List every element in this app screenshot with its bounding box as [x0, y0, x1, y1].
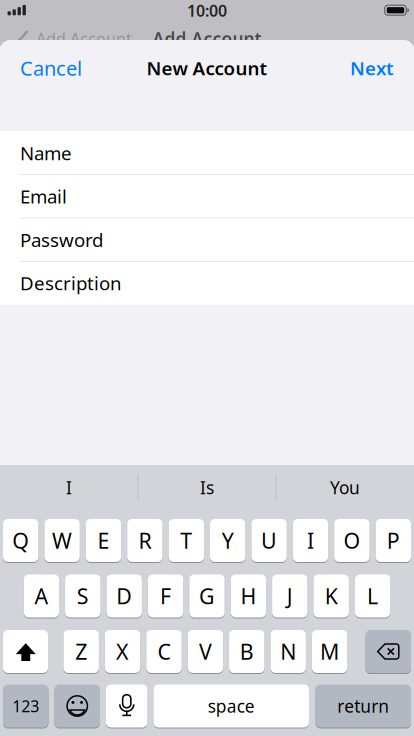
- staticText: E: [97, 526, 109, 555]
- button[interactable]: Password: [0, 218, 414, 261]
- button[interactable]: 123: [3, 684, 48, 728]
- staticText: K: [325, 582, 338, 610]
- button[interactable]: Is: [142, 465, 272, 510]
- staticText: Add Account: [152, 27, 261, 50]
- staticText: Is: [200, 476, 214, 499]
- button[interactable]: J: [272, 574, 307, 618]
- button[interactable]: Email: [0, 175, 414, 218]
- button[interactable]: M: [312, 629, 347, 673]
- staticText: B: [240, 637, 254, 666]
- button[interactable]: I: [293, 518, 328, 562]
- button[interactable]: R: [127, 518, 163, 562]
- staticText: O: [343, 526, 360, 555]
- button[interactable]: return: [315, 684, 411, 728]
- button[interactable]: T: [169, 518, 204, 562]
- staticText: Q: [12, 526, 29, 555]
- button[interactable]: Emoji: [54, 684, 100, 728]
- button[interactable]: L: [355, 574, 390, 618]
- button[interactable]: B: [229, 629, 264, 673]
- staticText: R: [138, 526, 151, 555]
- button[interactable]: Name: [0, 131, 414, 175]
- staticText: Email: [20, 184, 67, 209]
- button[interactable]: Q: [3, 518, 38, 562]
- staticText: You: [330, 476, 360, 499]
- staticText: F: [160, 582, 171, 610]
- button[interactable]: W: [44, 518, 80, 562]
- staticText: L: [367, 582, 378, 610]
- staticText: 123: [12, 695, 39, 717]
- staticText: I: [307, 526, 314, 555]
- button[interactable]: N: [270, 629, 306, 673]
- staticText: A: [34, 582, 48, 610]
- staticText: P: [387, 526, 400, 555]
- staticText: return: [337, 694, 389, 717]
- button[interactable]: A: [24, 574, 59, 618]
- staticText: T: [180, 526, 192, 555]
- button[interactable]: U: [251, 518, 287, 562]
- staticText: Y: [222, 526, 234, 555]
- button[interactable]: X: [105, 629, 140, 673]
- staticText: space: [208, 694, 255, 717]
- button[interactable]: I: [4, 465, 134, 510]
- staticText: X: [116, 637, 129, 666]
- button[interactable]: G: [189, 574, 225, 618]
- button[interactable]: P: [376, 518, 411, 562]
- button[interactable]: Shift: [3, 629, 48, 673]
- staticText: Description: [20, 271, 122, 295]
- staticText: Z: [75, 637, 87, 666]
- button[interactable]: space: [153, 684, 309, 728]
- button[interactable]: Next: [350, 56, 394, 80]
- staticText: H: [240, 582, 256, 610]
- staticText: Next: [350, 56, 394, 80]
- button[interactable]: C: [146, 629, 182, 673]
- staticText: Name: [20, 140, 72, 165]
- button[interactable]: Dictation: [106, 684, 147, 728]
- staticText: W: [52, 526, 72, 555]
- button[interactable]: H: [231, 574, 266, 618]
- button[interactable]: D: [106, 574, 142, 618]
- staticText: Password: [20, 227, 103, 252]
- button[interactable]: S: [65, 574, 100, 618]
- staticText: N: [280, 637, 296, 666]
- staticText: S: [77, 582, 89, 610]
- button[interactable]: K: [313, 574, 349, 618]
- button[interactable]: Y: [210, 518, 245, 562]
- staticText: J: [287, 582, 293, 610]
- staticText: New Account: [146, 56, 267, 80]
- button[interactable]: V: [188, 629, 223, 673]
- button[interactable]: You: [280, 465, 410, 510]
- staticText: Cancel: [20, 55, 82, 81]
- button[interactable]: Description: [0, 261, 414, 305]
- button[interactable]: O: [334, 518, 370, 562]
- staticText: D: [116, 582, 132, 610]
- button[interactable]: Cancel: [20, 55, 82, 81]
- staticText: 10:00: [187, 0, 227, 21]
- staticText: V: [199, 637, 212, 666]
- button[interactable]: Delete: [365, 629, 411, 673]
- staticText: I: [66, 476, 72, 499]
- button[interactable]: E: [86, 518, 121, 562]
- staticText: Add Account: [36, 28, 132, 49]
- button[interactable]: F: [148, 574, 183, 618]
- staticText: M: [320, 637, 339, 666]
- staticText: U: [261, 526, 277, 555]
- button[interactable]: Z: [63, 629, 99, 673]
- staticText: G: [199, 582, 215, 610]
- staticText: C: [157, 637, 170, 666]
